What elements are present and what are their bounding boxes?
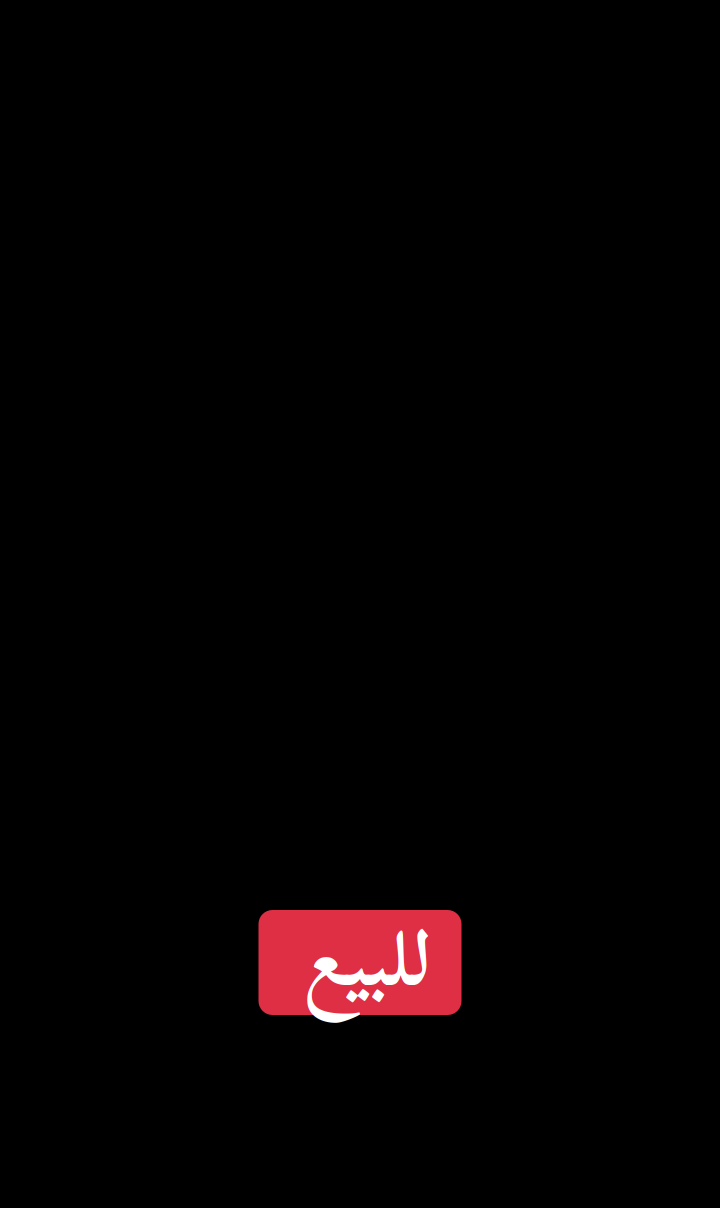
button[interactable]: للبيع	[258, 910, 461, 1015]
staticText: للبيع	[304, 883, 431, 1038]
